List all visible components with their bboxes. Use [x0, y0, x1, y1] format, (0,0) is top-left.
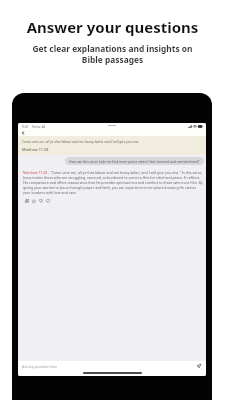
button[interactable]: Dislike	[37, 197, 44, 204]
staticText: Matthew 11:28	[22, 147, 49, 152]
staticText: Ask any question here	[22, 364, 58, 369]
button[interactable]: Send	[196, 363, 202, 369]
staticText: Come unto me, all ye that labour and are…	[22, 139, 140, 144]
staticText: Verse AI	[32, 124, 46, 129]
button[interactable]: Copy	[23, 197, 30, 204]
staticText: Get clear explanations and insights on B…	[0, 43, 225, 65]
staticText: Matthew 11:28 - "Come unto me, all ye th…	[23, 170, 204, 195]
button[interactable]: Comment	[44, 197, 51, 204]
button[interactable]: Back	[20, 130, 26, 136]
staticText: 9:41	[22, 124, 29, 129]
staticText: Answer your questions	[0, 17, 225, 37]
staticText: How can this verse help me find inner pe…	[69, 159, 200, 163]
button[interactable]: Like	[30, 197, 37, 204]
